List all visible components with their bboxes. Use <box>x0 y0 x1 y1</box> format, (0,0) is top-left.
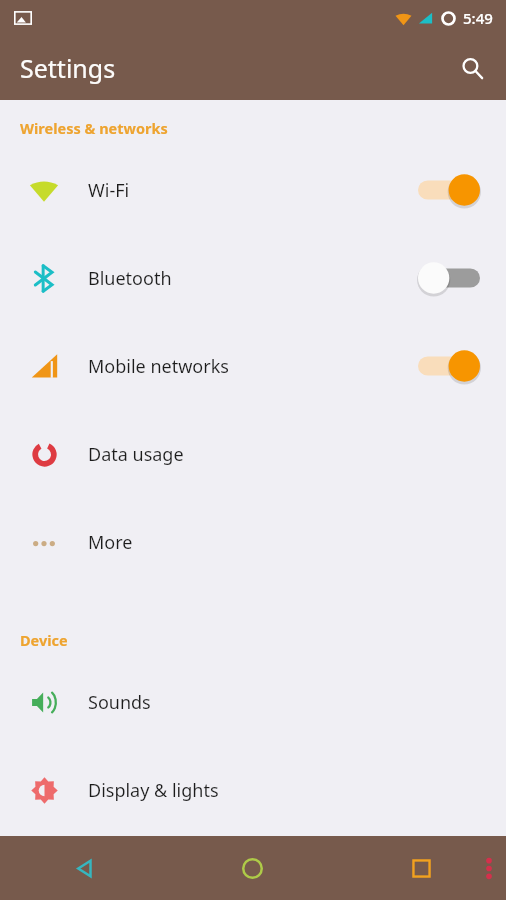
staticText: Settings <box>20 51 116 85</box>
button[interactable]: Bluetooth switch <box>414 256 484 300</box>
button[interactable]: Search <box>448 44 496 92</box>
button[interactable]: Data usage <box>0 410 506 498</box>
button[interactable]: Back <box>0 836 168 900</box>
staticText: 5:49 <box>463 8 493 28</box>
button[interactable]: Mobile networks switch <box>414 344 484 388</box>
button[interactable]: More options <box>472 836 506 900</box>
button[interactable]: Mobile networks <box>0 322 506 410</box>
staticText: Display & lights <box>88 778 219 803</box>
staticText: Wi-Fi <box>88 178 130 203</box>
button[interactable]: Home <box>168 836 337 900</box>
button[interactable]: Recents <box>337 836 506 900</box>
button[interactable]: Display & lights <box>0 746 506 834</box>
button[interactable]: More <box>0 498 506 586</box>
staticText: Mobile networks <box>88 354 229 379</box>
button[interactable]: Wi-Fi <box>0 146 506 234</box>
button[interactable]: Bluetooth <box>0 234 506 322</box>
button[interactable]: Sounds <box>0 658 506 746</box>
staticText: Sounds <box>88 690 151 715</box>
staticText: Data usage <box>88 442 184 467</box>
staticText: Wireless & networks <box>20 118 168 138</box>
staticText: More <box>88 530 133 555</box>
staticText: Bluetooth <box>88 266 172 291</box>
staticText: Device <box>20 630 68 650</box>
button[interactable]: Wi-Fi switch <box>414 168 484 212</box>
